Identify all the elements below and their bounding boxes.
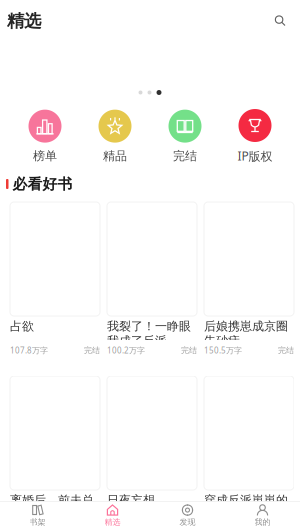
button[interactable]: 完结 [150,110,220,163]
staticText: 榜单 [33,149,57,163]
staticText: 必看好书 [12,175,72,193]
staticText: 92.1万字 [107,519,140,526]
staticText: 精选 [7,10,41,32]
staticText: 日夜妄想 [107,493,155,508]
staticText: 100.2万字 [107,345,145,356]
button[interactable]: 精选 [75,504,150,526]
button[interactable]: 发现 [150,504,225,526]
button[interactable]: 精品 [80,110,150,163]
button[interactable]: 榜单 [10,110,80,163]
staticText: 107.8万字 [10,345,48,356]
staticText: 完结 [173,149,197,163]
button[interactable]: 占欲 [10,202,100,355]
staticText: 我的 [254,517,270,526]
staticText: 完结 [278,345,294,355]
button[interactable]: 后娘携崽成京圈朱砂痣 [204,202,294,355]
staticText: 穿成反派崽崽的恶毒后娘 [204,493,288,522]
button[interactable]: 离婚后，前夫总是想复合 [10,376,100,526]
staticText: 完结 [84,345,100,355]
staticText: 后娘携崽成京圈朱砂痣 [204,319,288,348]
staticText: 发现 [179,517,195,526]
button[interactable]: 穿成反派崽崽的恶毒后娘 [204,376,294,526]
staticText: 占欲 [10,319,34,334]
staticText: 我裂了！一睁眼我成了反派 [107,319,191,348]
button[interactable]: 搜索 [270,10,291,31]
staticText: 书架 [29,517,45,526]
button[interactable]: 书架 [0,504,75,526]
staticText: 精品 [103,149,127,163]
staticText: 离婚后，前夫总是想复合 [10,493,94,522]
button[interactable]: IP版权 [220,109,290,164]
button[interactable]: 我的 [225,504,300,526]
staticText: 精选 [104,517,120,526]
button[interactable]: 我裂了！一睁眼我成了反派 [107,202,197,355]
staticText: 完结 [181,519,197,526]
staticText: IP版权 [237,148,272,164]
button[interactable]: 日夜妄想 [107,376,197,526]
staticText: 完结 [181,345,197,355]
staticText: 88.6万字 [10,519,43,526]
staticText: 150.5万字 [204,345,242,356]
